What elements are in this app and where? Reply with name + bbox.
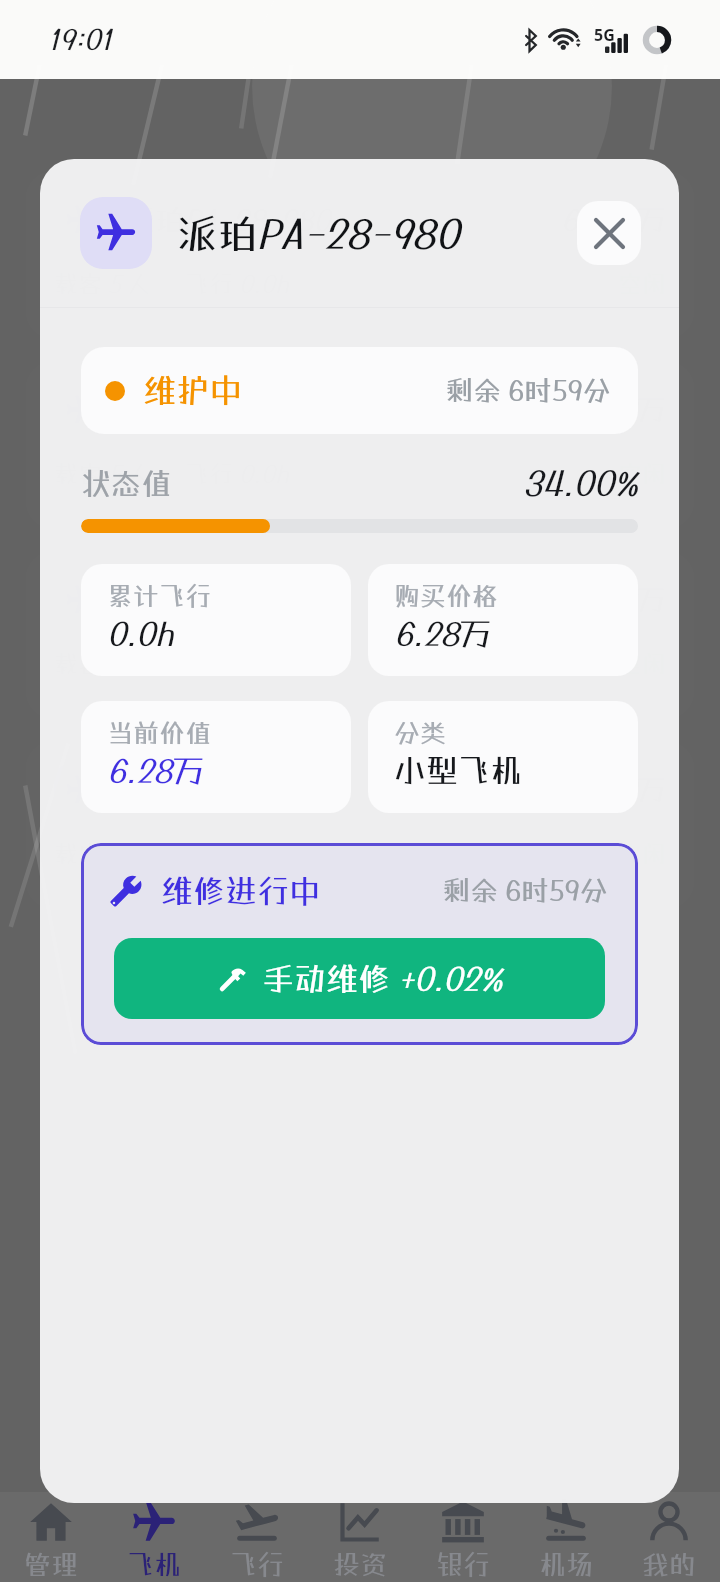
- staticText: 西锐SR22-471: [126, 393, 310, 427]
- staticText: 飞行: [230, 1548, 284, 1580]
- staticText: 派珀PA-28-980: [126, 203, 331, 237]
- staticText: 6.28万: [394, 615, 492, 653]
- button[interactable]: 投资: [308, 1492, 411, 1582]
- staticText: 5G: [594, 24, 615, 46]
- button[interactable]: 飞行: [205, 1492, 308, 1582]
- staticText: 空闲: [618, 839, 666, 867]
- staticText: 投资: [333, 1548, 387, 1580]
- staticText: 19:01: [48, 23, 112, 56]
- staticText: 飞行 0.0h: [185, 839, 290, 867]
- staticText: 小型飞机: [394, 752, 523, 790]
- staticText: 空闲: [618, 649, 666, 677]
- staticText: 34.00%: [523, 463, 638, 503]
- staticText: 载客 5 人: [54, 459, 151, 487]
- staticText: 6.28万: [107, 752, 205, 790]
- button[interactable]: 银行: [411, 1492, 514, 1582]
- staticText: 我的: [642, 1548, 696, 1580]
- button[interactable]: 我的: [617, 1492, 720, 1582]
- staticText: 62.66万: [561, 203, 666, 237]
- staticText: 剩余 6时59分: [445, 374, 611, 407]
- staticText: 载客 5 人: [54, 649, 151, 677]
- staticText: 维护中: [143, 371, 242, 410]
- button[interactable]: 管理: [0, 1492, 102, 1582]
- staticText: 分类: [394, 717, 447, 748]
- button[interactable]: 手动维修 +0.02%: [114, 938, 605, 1019]
- staticText: 购买价格: [394, 580, 499, 611]
- staticText: 机场: [539, 1548, 593, 1580]
- staticText: 派珀PA-28-980: [177, 210, 460, 257]
- staticText: 0.0h: [107, 615, 175, 653]
- button[interactable]: 塞斯纳172-103: [26, 551, 694, 719]
- button[interactable]: 机场: [514, 1492, 617, 1582]
- staticText: 塞斯纳172-103: [126, 583, 317, 617]
- button[interactable]: Close: [577, 201, 641, 265]
- button[interactable]: 西锐SR22-471: [26, 361, 694, 529]
- staticText: 状态值: [81, 466, 171, 501]
- button[interactable]: 派珀PA-28-980: [26, 171, 694, 339]
- button[interactable]: 钻石DA40-882: [26, 741, 694, 909]
- staticText: 管理: [24, 1548, 78, 1580]
- staticText: 剩余 6时59分: [442, 874, 608, 907]
- staticText: 当前价值: [107, 717, 212, 748]
- staticText: 银行: [436, 1548, 490, 1580]
- button[interactable]: 飞机: [102, 1492, 205, 1582]
- staticText: 空闲: [618, 459, 666, 487]
- staticText: 维修进行中: [161, 872, 322, 910]
- staticText: 92.66万: [562, 393, 666, 427]
- staticText: 手动维修 +0.02%: [262, 960, 503, 998]
- staticText: 58.30万: [561, 773, 666, 807]
- staticText: 钻石DA40-882: [126, 773, 319, 807]
- staticText: 飞机: [127, 1548, 181, 1580]
- staticText: 41.20万: [565, 583, 666, 617]
- staticText: 载客 5 人: [54, 839, 151, 867]
- staticText: 累计飞行: [107, 580, 212, 611]
